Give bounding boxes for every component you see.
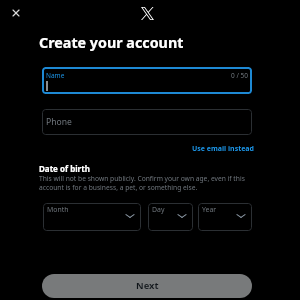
staticText: Month [47, 205, 69, 214]
staticText: 0 / 50 [231, 71, 248, 80]
staticText: Next [136, 279, 159, 292]
button[interactable]: Year [198, 203, 252, 231]
button[interactable]: Phone [42, 109, 252, 135]
button[interactable]: Next [42, 274, 252, 298]
staticText: This will not be shown publicly. Confirm… [39, 174, 249, 192]
button[interactable]: Name [42, 67, 252, 94]
button[interactable]: Use email instead [180, 142, 254, 155]
staticText: Year [202, 205, 217, 214]
button[interactable]: Close [7, 4, 25, 22]
staticText: Name [46, 71, 65, 80]
staticText: Phone [46, 116, 72, 128]
staticText: Day [152, 205, 165, 214]
staticText: Date of birth [39, 163, 90, 174]
staticText: Create your account [39, 33, 184, 52]
staticText: Use email instead [192, 144, 254, 154]
button[interactable]: Day [148, 203, 193, 231]
button[interactable]: Month [43, 203, 141, 231]
